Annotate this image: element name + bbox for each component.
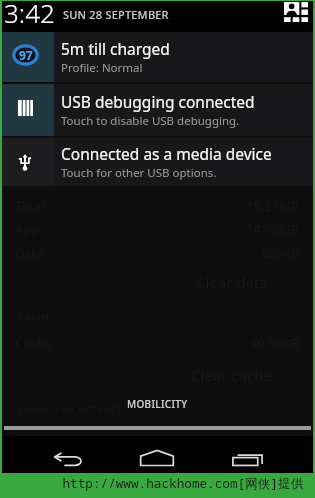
button[interactable]: Back bbox=[45, 442, 91, 476]
button[interactable]: 97 bbox=[2, 32, 313, 82]
staticText: SUN 28 SEPTEMBER bbox=[63, 7, 169, 22]
staticText: http://www.hackhome.com[网侠]提供 bbox=[62, 474, 304, 491]
button[interactable]: Recent apps bbox=[224, 442, 270, 476]
staticText: Connected as a media device bbox=[61, 143, 272, 164]
staticText: 5m till charged bbox=[61, 38, 170, 59]
staticText: 97 bbox=[19, 47, 33, 63]
staticText: MOBILICITY bbox=[127, 397, 188, 411]
staticText: Profile: Normal bbox=[61, 60, 143, 76]
button[interactable]: Connected as a media device bbox=[2, 138, 313, 186]
button[interactable]: Home bbox=[134, 441, 180, 475]
staticText: Touch to disable USB debugging. bbox=[61, 113, 240, 129]
button[interactable]: USB debugging connected bbox=[2, 84, 313, 136]
button[interactable]: Quick settings bbox=[283, 0, 309, 24]
staticText: USB debugging connected bbox=[61, 91, 255, 112]
staticText: 3:42 bbox=[4, 0, 55, 26]
staticText: Touch for other USB options. bbox=[61, 165, 217, 181]
